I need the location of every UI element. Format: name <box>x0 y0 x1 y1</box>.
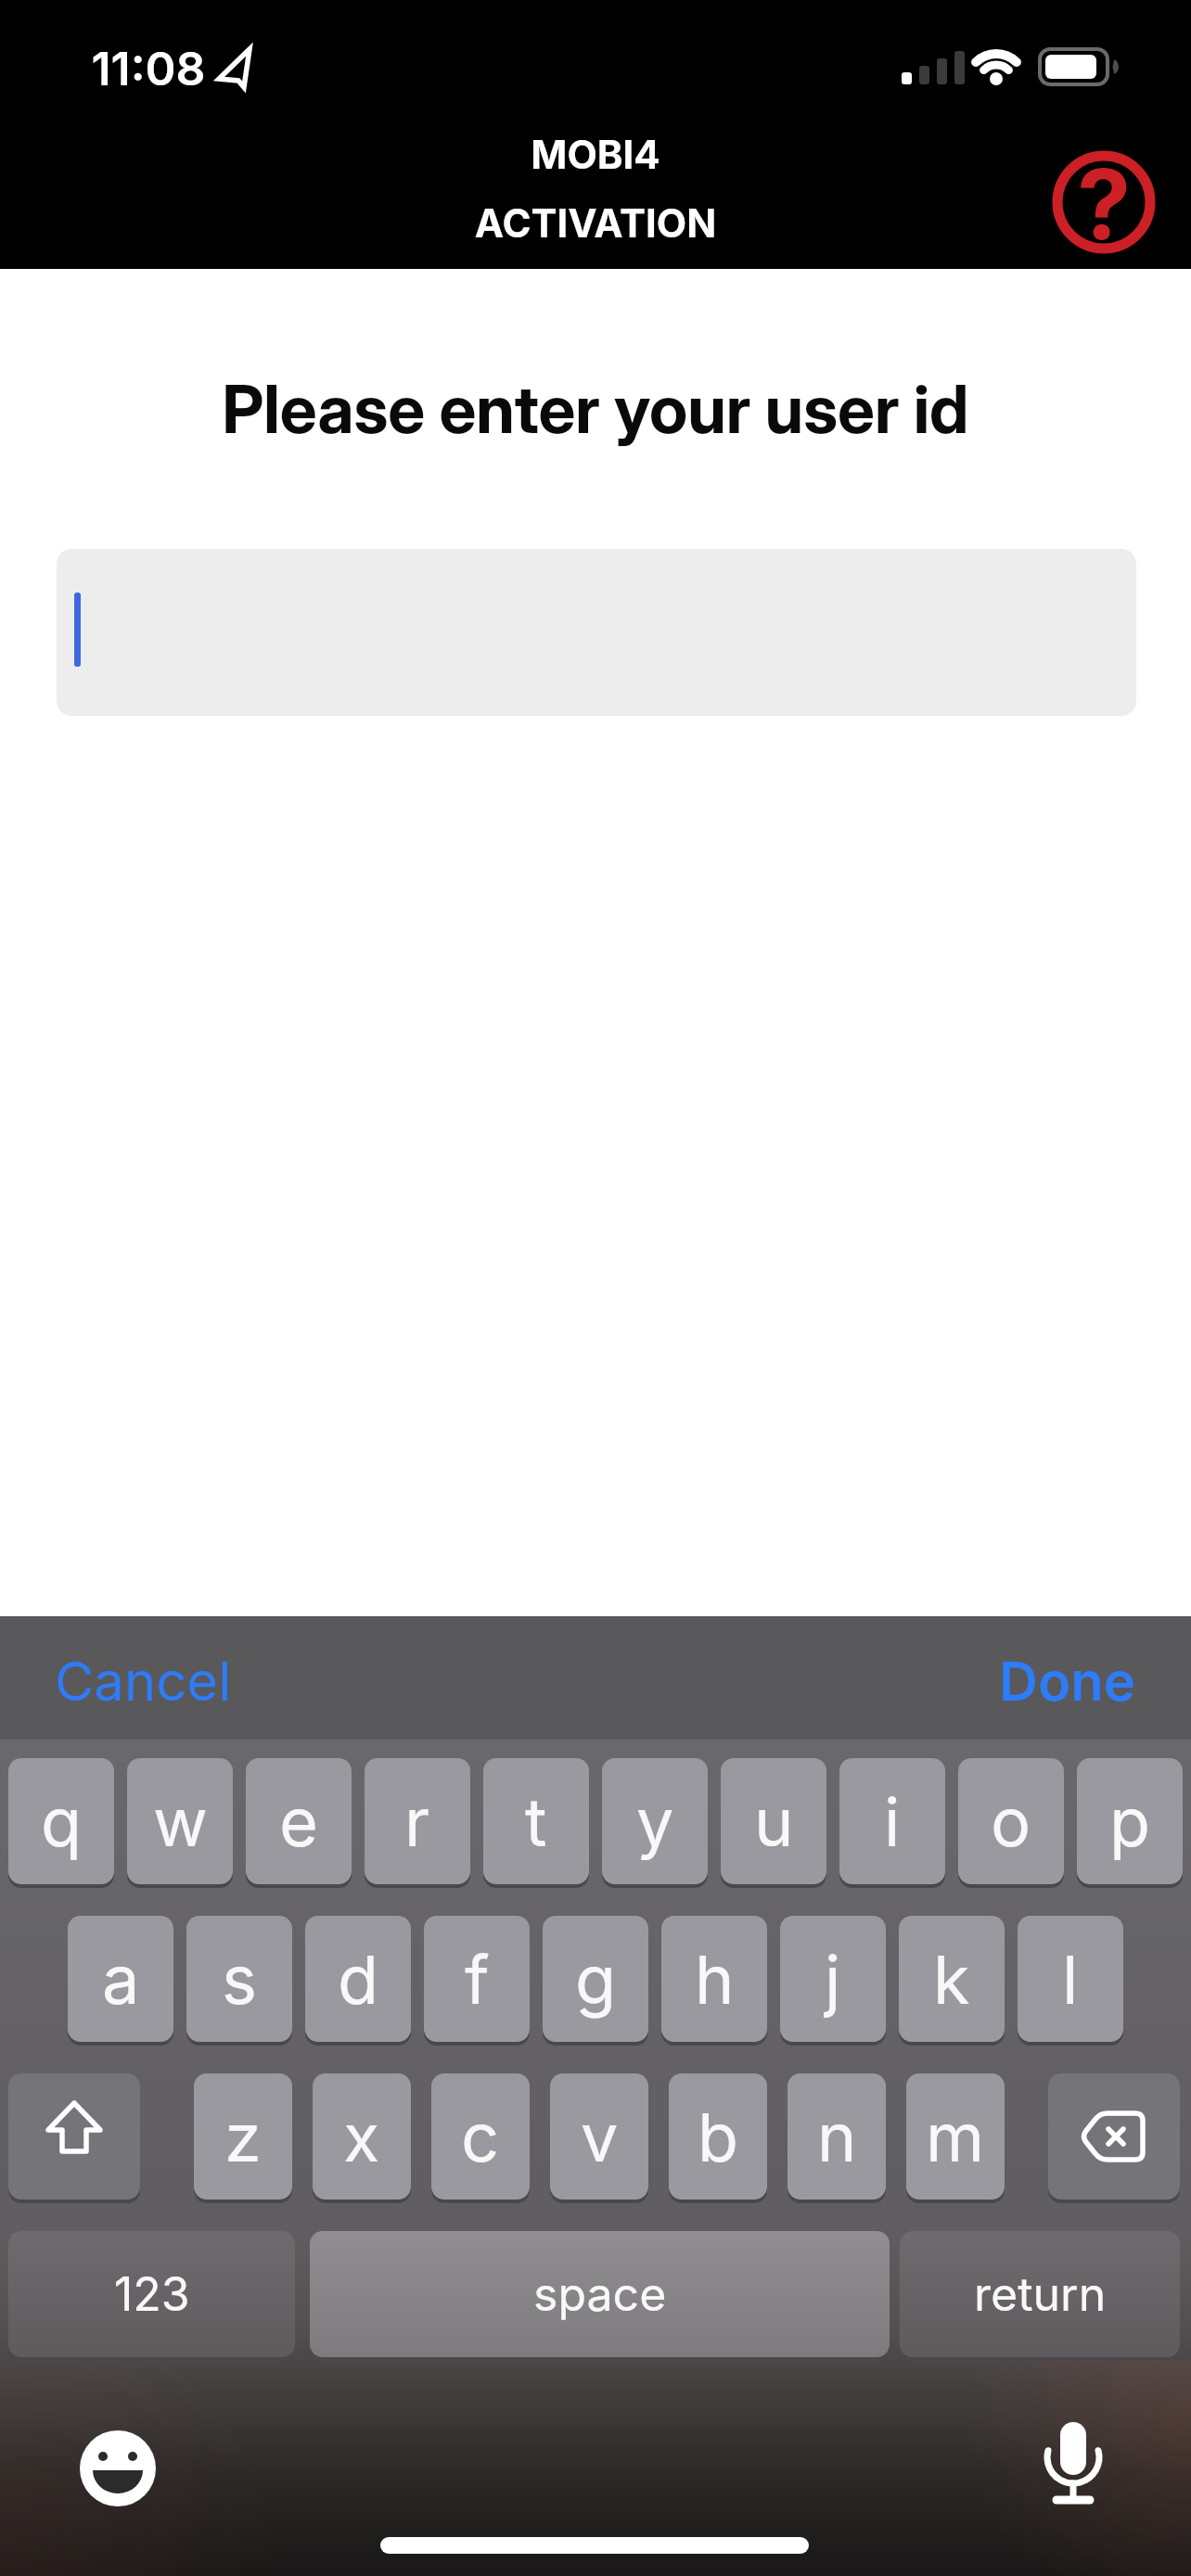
button[interactable]: d <box>305 1916 411 2042</box>
button[interactable] <box>80 2430 158 2508</box>
button[interactable]: 123 <box>8 2231 295 2357</box>
staticText: b <box>698 2097 739 2177</box>
button[interactable]: r <box>365 1758 470 1884</box>
button[interactable]: l <box>1018 1916 1123 2042</box>
staticText: q <box>41 1781 83 1862</box>
staticText: ? <box>1057 146 1150 300</box>
button[interactable] <box>57 549 1136 716</box>
button[interactable] <box>8 2073 140 2200</box>
staticText: f <box>465 1939 490 2020</box>
staticText: h <box>695 1939 735 2020</box>
button[interactable]: m <box>906 2073 1005 2200</box>
staticText: o <box>991 1781 1031 1862</box>
button[interactable]: Done <box>913 1649 1135 1729</box>
button[interactable]: return <box>900 2231 1180 2357</box>
staticText: j <box>825 1939 841 2020</box>
staticText: d <box>338 1939 379 2020</box>
staticText: Done <box>913 1649 1135 1714</box>
staticText: MOBI4 <box>0 131 1191 193</box>
button[interactable]: k <box>899 1916 1005 2042</box>
button[interactable] <box>1041 2411 1108 2507</box>
button[interactable]: b <box>669 2073 767 2200</box>
staticText: z <box>224 2097 262 2177</box>
staticText: g <box>575 1939 617 2020</box>
button[interactable]: e <box>246 1758 352 1884</box>
staticText: return <box>974 2266 1107 2322</box>
button[interactable]: j <box>780 1916 886 2042</box>
staticText: x <box>343 2097 380 2177</box>
staticText: u <box>754 1781 794 1862</box>
button[interactable]: q <box>8 1758 114 1884</box>
staticText: e <box>279 1781 318 1862</box>
button[interactable]: x <box>313 2073 411 2200</box>
staticText: Cancel <box>55 1649 333 1714</box>
button[interactable]: i <box>839 1758 945 1884</box>
button[interactable]: t <box>483 1758 589 1884</box>
staticText: p <box>1109 1781 1151 1862</box>
staticText: ACTIVATION <box>0 199 1191 261</box>
button[interactable]: f <box>424 1916 530 2042</box>
staticText: v <box>581 2097 619 2177</box>
button[interactable]: y <box>602 1758 708 1884</box>
staticText: s <box>222 1939 258 2020</box>
button[interactable]: h <box>661 1916 767 2042</box>
button[interactable] <box>1054 152 1154 252</box>
button[interactable] <box>1048 2073 1180 2200</box>
staticText: m <box>926 2097 985 2177</box>
button[interactable]: c <box>431 2073 530 2200</box>
staticText: i <box>884 1781 901 1862</box>
button[interactable]: s <box>186 1916 292 2042</box>
staticText: n <box>817 2097 857 2177</box>
button[interactable]: o <box>958 1758 1064 1884</box>
staticText: k <box>933 1939 970 2020</box>
staticText: r <box>404 1781 430 1862</box>
button[interactable]: Cancel <box>55 1649 333 1729</box>
button[interactable]: u <box>721 1758 826 1884</box>
button[interactable]: g <box>543 1916 648 2042</box>
staticText: y <box>636 1781 674 1862</box>
staticText: a <box>102 1939 140 2020</box>
staticText: 123 <box>114 2266 190 2322</box>
button[interactable]: space <box>310 2231 890 2357</box>
button[interactable]: z <box>194 2073 292 2200</box>
button[interactable]: v <box>550 2073 648 2200</box>
staticText: space <box>533 2266 667 2322</box>
button[interactable]: n <box>788 2073 886 2200</box>
staticText: l <box>1062 1939 1079 2020</box>
button[interactable]: w <box>127 1758 233 1884</box>
button[interactable]: p <box>1077 1758 1183 1884</box>
staticText: c <box>461 2097 500 2177</box>
staticText: t <box>525 1781 547 1862</box>
staticText: 11:08 <box>56 41 241 115</box>
staticText: Please enter your user id <box>0 369 1191 475</box>
staticText: w <box>153 1781 208 1862</box>
button[interactable]: a <box>68 1916 173 2042</box>
